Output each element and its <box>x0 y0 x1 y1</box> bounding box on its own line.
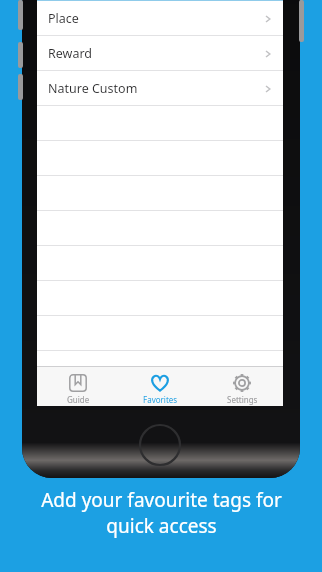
button[interactable]: Settings <box>201 369 283 405</box>
button[interactable]: Place <box>37 1 283 36</box>
other: Settings <box>232 373 252 393</box>
staticText: Favorites <box>143 394 178 405</box>
staticText: Reward <box>48 45 93 62</box>
staticText: Add your favourite tags for quick access <box>41 487 282 538</box>
staticText: Guide <box>67 394 90 405</box>
staticText: Settings <box>227 394 258 405</box>
staticText: Nature Custom <box>48 80 138 97</box>
button[interactable]: Reward <box>37 36 283 71</box>
staticText: Place <box>48 10 79 27</box>
other: Favorites <box>150 373 170 393</box>
other: Guide <box>68 373 88 393</box>
button[interactable]: Favorites <box>119 369 201 405</box>
button[interactable]: Nature Custom <box>37 71 283 106</box>
button[interactable]: Guide <box>37 369 119 405</box>
